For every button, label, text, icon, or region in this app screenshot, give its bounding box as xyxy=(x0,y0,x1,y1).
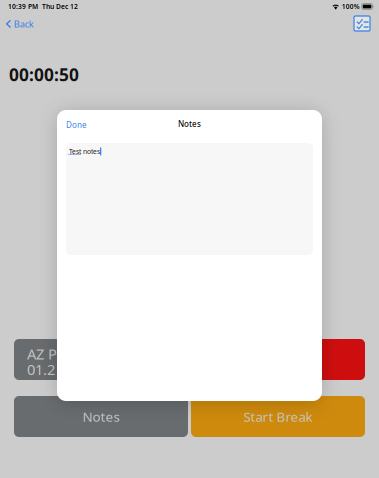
button[interactable]: AZ PHX Route 1 xyxy=(14,339,189,380)
staticText: 01.2 mi xyxy=(27,359,77,379)
staticText: Back xyxy=(14,18,34,30)
staticText: Done xyxy=(66,119,87,130)
staticText: Start Break xyxy=(243,408,312,425)
staticText: 100% xyxy=(340,2,362,11)
button[interactable]: Notes text field xyxy=(66,143,313,255)
staticText: 10:39 PM xyxy=(8,2,38,11)
staticText: AZ PHX Route 1 xyxy=(27,344,133,363)
button[interactable]: Done xyxy=(61,114,92,135)
button[interactable]: Back xyxy=(0,13,42,35)
button[interactable]: Stop shift xyxy=(192,339,365,380)
staticText: Notes xyxy=(82,408,119,425)
staticText: 00:00:50 xyxy=(9,63,79,86)
staticText: Test notes xyxy=(69,147,100,156)
staticText: Thu Dec 12 xyxy=(38,2,78,11)
button[interactable]: Notes xyxy=(14,396,188,437)
button[interactable]: Start Break xyxy=(191,396,365,437)
button[interactable]: Checklist xyxy=(346,13,379,35)
staticText: Notes xyxy=(178,118,201,129)
